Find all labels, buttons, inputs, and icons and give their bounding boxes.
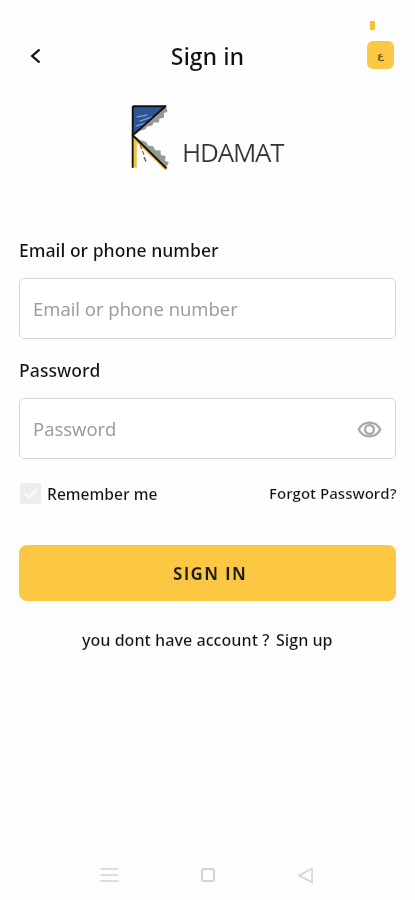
staticText: Remember me	[47, 483, 158, 504]
button[interactable]: Password	[19, 398, 396, 459]
staticText: HDAMAT	[182, 134, 284, 169]
staticText: you dont have account ?	[82, 629, 270, 651]
staticText: ع	[377, 50, 384, 62]
staticText: Email or phone number	[19, 238, 219, 262]
button[interactable]: Sign up	[276, 629, 333, 651]
button[interactable]: Forgot Password?	[269, 483, 397, 503]
button[interactable]: Show password	[351, 411, 387, 447]
button[interactable]: Back	[15, 36, 55, 76]
button[interactable]: Email or phone number	[19, 278, 396, 339]
staticText: Password	[33, 416, 117, 441]
button[interactable]: Home	[188, 855, 228, 895]
button[interactable]: Back	[285, 855, 325, 895]
staticText: SIGN IN	[173, 562, 248, 585]
staticText: Password	[19, 358, 101, 382]
button[interactable]: Recent apps	[89, 855, 129, 895]
staticText: Email or phone number	[33, 296, 238, 321]
button[interactable]: Remember me	[20, 483, 158, 504]
staticText: Sign in	[0, 40, 415, 71]
button[interactable]: Change language	[367, 41, 394, 69]
button[interactable]: SIGN IN	[19, 545, 396, 601]
